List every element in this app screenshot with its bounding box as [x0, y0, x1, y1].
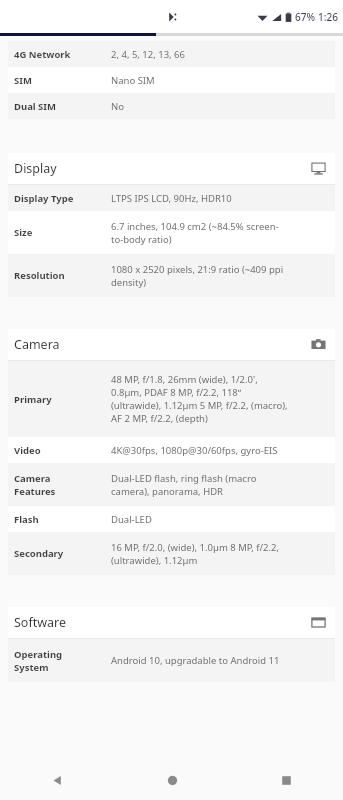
staticText: 2, 4, 5, 12, 13, 66: [111, 48, 185, 61]
button[interactable]: Primary: [8, 361, 335, 437]
button[interactable]: Display Type: [8, 185, 335, 211]
staticText: 6.7 inches, 104.9 cm2 (~84.5% screen- to…: [111, 220, 279, 246]
button[interactable]: Resolution: [8, 254, 335, 297]
button[interactable]: Home: [115, 760, 229, 800]
staticText: Flash: [14, 513, 39, 526]
staticText: Display Type: [14, 192, 74, 205]
staticText: Dual-LED flash, ring flash (macro camera…: [111, 472, 257, 498]
button[interactable]: Flash: [8, 506, 335, 532]
button[interactable]: Camera Features: [8, 463, 335, 506]
staticText: Nano SIM: [111, 74, 155, 87]
button[interactable]: SIM: [8, 67, 335, 93]
button[interactable]: Dual SIM: [8, 93, 335, 119]
button[interactable]: Operating System: [8, 639, 335, 682]
staticText: 1080 x 2520 pixels, 21:9 ratio (~409 ppi…: [111, 263, 284, 289]
staticText: Resolution: [14, 269, 65, 282]
staticText: No: [111, 100, 124, 113]
button[interactable]: Back: [0, 760, 115, 800]
button[interactable]: Software: [8, 607, 335, 638]
staticText: Size: [14, 226, 33, 239]
staticText: 67%: [295, 10, 315, 24]
button[interactable]: Size: [8, 211, 335, 254]
button[interactable]: Camera: [8, 329, 335, 360]
staticText: 4G Network: [14, 48, 71, 61]
other: Software: [311, 615, 326, 630]
button[interactable]: 4G Network: [8, 41, 335, 67]
button[interactable]: Video: [8, 437, 335, 463]
staticText: Secondary: [14, 547, 64, 560]
staticText: Primary: [14, 393, 52, 406]
other: Camera: [311, 337, 326, 352]
staticText: Display: [14, 160, 57, 177]
staticText: Camera Features: [14, 472, 56, 498]
staticText: Video: [14, 444, 41, 457]
staticText: 16 MP, f/2.0, (wide), 1.0µm 8 MP, f/2.2,…: [111, 541, 280, 567]
staticText: Operating System: [14, 648, 63, 674]
button[interactable]: Recents: [229, 760, 343, 800]
staticText: Dual-LED: [111, 513, 152, 526]
staticText: Camera: [14, 336, 60, 353]
staticText: SIM: [14, 74, 32, 87]
other: Display: [311, 161, 326, 176]
staticText: LTPS IPS LCD, 90Hz, HDR10: [111, 192, 232, 205]
button[interactable]: Display: [8, 153, 335, 184]
staticText: 48 MP, f/1.8, 26mm (wide), 1/2.0', 0.8µm…: [111, 373, 288, 425]
staticText: 4K@30fps, 1080p@30/60fps, gyro-EIS: [111, 444, 278, 457]
staticText: Dual SIM: [14, 100, 57, 113]
button[interactable]: Secondary: [8, 532, 335, 575]
staticText: Software: [14, 614, 67, 631]
staticText: 1:26: [318, 10, 338, 24]
staticText: Android 10, upgradable to Android 11: [111, 654, 280, 667]
